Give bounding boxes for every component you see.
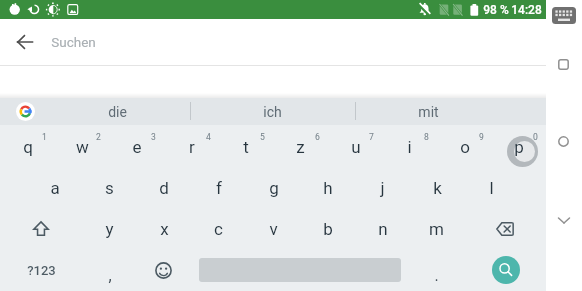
staticText: f	[216, 178, 222, 198]
button[interactable]: z	[273, 126, 328, 167]
button[interactable]: Google	[10, 98, 40, 125]
button[interactable]: t	[218, 126, 273, 167]
staticText: i	[407, 137, 412, 157]
button[interactable]: b	[300, 208, 355, 249]
staticText: 0	[533, 132, 538, 142]
button[interactable]: i	[382, 126, 437, 167]
staticText: ,	[108, 266, 112, 285]
staticText: m	[429, 219, 444, 239]
staticText: h	[323, 178, 333, 198]
staticText: b	[323, 219, 333, 239]
button[interactable]: j	[355, 167, 410, 208]
button[interactable]: v	[246, 208, 301, 249]
button[interactable]: w	[55, 126, 110, 167]
staticText: 3	[151, 132, 156, 142]
staticText: ?123	[27, 263, 56, 278]
button[interactable]: h	[300, 167, 355, 208]
button[interactable]: Shift	[0, 208, 82, 249]
button[interactable]: f	[191, 167, 246, 208]
staticText: 9	[479, 132, 484, 142]
button[interactable]: o	[437, 126, 492, 167]
staticText: .	[434, 266, 439, 285]
button[interactable]: Navigate up	[9, 26, 41, 58]
button[interactable]: Show keyboard	[552, 7, 576, 24]
button[interactable]: .	[409, 250, 464, 291]
staticText: n	[378, 219, 388, 239]
button[interactable]: Recent apps	[558, 59, 569, 70]
staticText: 8	[424, 132, 429, 142]
staticText: o	[460, 137, 470, 157]
button[interactable]: q	[0, 126, 55, 167]
staticText: q	[23, 137, 33, 157]
staticText: j	[380, 178, 385, 198]
staticText: e	[132, 137, 142, 157]
staticText: z	[296, 137, 305, 157]
staticText: 98 %	[483, 3, 509, 17]
staticText: 2	[96, 132, 101, 142]
button[interactable]: u	[328, 126, 383, 167]
staticText: s	[105, 178, 114, 198]
button[interactable]: ,	[82, 250, 137, 291]
button[interactable]: x	[137, 208, 192, 249]
button[interactable]: Search	[492, 256, 520, 284]
staticText: u	[351, 137, 361, 157]
staticText: p	[514, 137, 524, 157]
button[interactable]: c	[191, 208, 246, 249]
button[interactable]: Delete	[464, 208, 546, 249]
staticText: ich	[263, 104, 282, 120]
staticText: c	[214, 219, 223, 239]
staticText: w	[76, 137, 89, 157]
button[interactable]: a	[27, 167, 82, 208]
button[interactable]: g	[246, 167, 301, 208]
button[interactable]: m	[409, 208, 464, 249]
button[interactable]: s	[82, 167, 137, 208]
button[interactable]: Back	[556, 214, 572, 226]
button[interactable]: die	[43, 98, 191, 125]
button[interactable]: e	[109, 126, 164, 167]
staticText: g	[269, 178, 279, 198]
staticText: x	[160, 219, 169, 239]
button[interactable]: y	[82, 208, 137, 249]
staticText: 14:28	[511, 3, 542, 17]
staticText: r	[189, 137, 195, 157]
button[interactable]: n	[355, 208, 410, 249]
staticText: Suchen	[51, 34, 96, 50]
button[interactable]: Emoji	[136, 250, 191, 291]
staticText: v	[269, 219, 278, 239]
button[interactable]: ich	[190, 98, 355, 125]
staticText: d	[159, 178, 169, 198]
button[interactable]: Home	[558, 136, 569, 147]
button[interactable]: d	[136, 167, 191, 208]
staticText: 5	[260, 132, 265, 142]
staticText: l	[489, 178, 494, 198]
button[interactable]: Symbols	[0, 250, 82, 291]
button[interactable]: r	[164, 126, 219, 167]
staticText: a	[50, 178, 60, 198]
button[interactable]: k	[410, 167, 465, 208]
staticText: 1	[42, 132, 47, 142]
staticText: k	[433, 178, 442, 198]
staticText: 6	[315, 132, 320, 142]
staticText: mit	[418, 104, 439, 120]
button[interactable]: mit	[355, 98, 501, 125]
staticText: t	[243, 137, 249, 157]
staticText: 4	[206, 132, 211, 142]
staticText: 7	[369, 132, 374, 142]
staticText: die	[108, 104, 127, 120]
button[interactable]: p	[491, 126, 546, 167]
button[interactable]: l	[464, 167, 519, 208]
staticText: y	[105, 219, 114, 239]
